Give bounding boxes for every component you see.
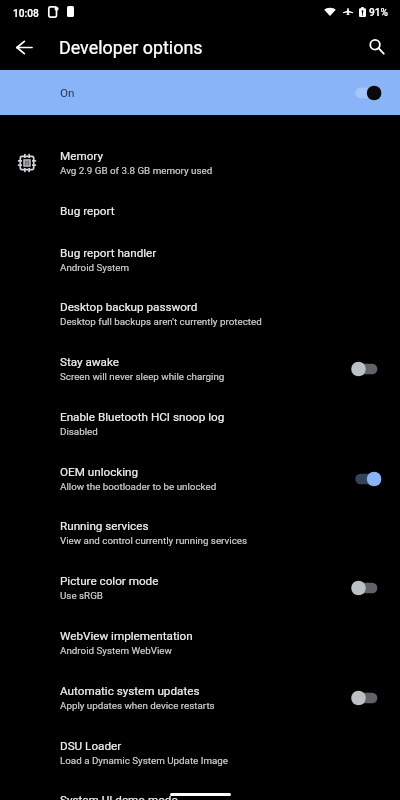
staticText: Apply updates when device restarts — [60, 700, 215, 711]
staticText: Screen will never sleep while charging — [60, 371, 225, 382]
button[interactable]: Bug report handler — [0, 246, 400, 301]
staticText: WebView implementation — [60, 629, 193, 643]
staticText: Avg 2.9 GB of 3.8 GB memory used — [60, 165, 213, 176]
button[interactable]: Running services — [0, 519, 400, 574]
button[interactable]: Automatic system updates — [0, 684, 400, 739]
button[interactable]: Search — [362, 32, 392, 62]
staticText: Picture color mode — [60, 574, 159, 588]
staticText: Running services — [60, 519, 149, 533]
staticText: DSU Loader — [60, 739, 122, 753]
staticText: Bug report handler — [60, 246, 157, 260]
staticText: 91% — [369, 7, 389, 19]
button[interactable]: Back — [10, 33, 38, 61]
button[interactable]: Desktop backup password — [0, 300, 400, 355]
staticText: Use sRGB — [60, 590, 103, 601]
button[interactable]: WebView implementation — [0, 629, 400, 684]
staticText: Allow the bootloader to be unlocked — [60, 481, 217, 492]
staticText: Disabled — [60, 426, 98, 437]
staticText: View and control currently running servi… — [60, 535, 248, 546]
staticText: On — [60, 86, 75, 100]
button[interactable]: On — [0, 70, 400, 115]
staticText: Developer options — [59, 37, 203, 58]
button[interactable]: DSU Loader — [0, 739, 400, 794]
staticText: Bug report — [60, 204, 115, 218]
button[interactable]: OEM unlocking — [0, 465, 400, 520]
button[interactable]: Enable Bluetooth HCI snoop log — [0, 410, 400, 465]
button[interactable]: Bug report — [0, 204, 400, 245]
staticText: Desktop full backups aren't currently pr… — [60, 316, 262, 327]
staticText: Desktop backup password — [60, 300, 198, 314]
staticText: Automatic system updates — [60, 684, 200, 698]
staticText: Memory — [60, 149, 103, 163]
button[interactable]: Picture color mode — [0, 574, 400, 629]
staticText: Android System WebView — [60, 645, 172, 656]
button[interactable]: System UI demo mode — [0, 793, 400, 800]
staticText: Stay awake — [60, 355, 119, 369]
staticText: Android System — [60, 262, 129, 273]
staticText: 10:08 — [13, 8, 39, 20]
staticText: Enable Bluetooth HCI snoop log — [60, 410, 225, 424]
staticText: System UI demo mode — [60, 793, 178, 800]
button[interactable]: Stay awake — [0, 355, 400, 410]
button[interactable]: Memory — [0, 149, 400, 204]
staticText: OEM unlocking — [60, 465, 139, 479]
staticText: Load a Dynamic System Update Image — [60, 755, 228, 766]
